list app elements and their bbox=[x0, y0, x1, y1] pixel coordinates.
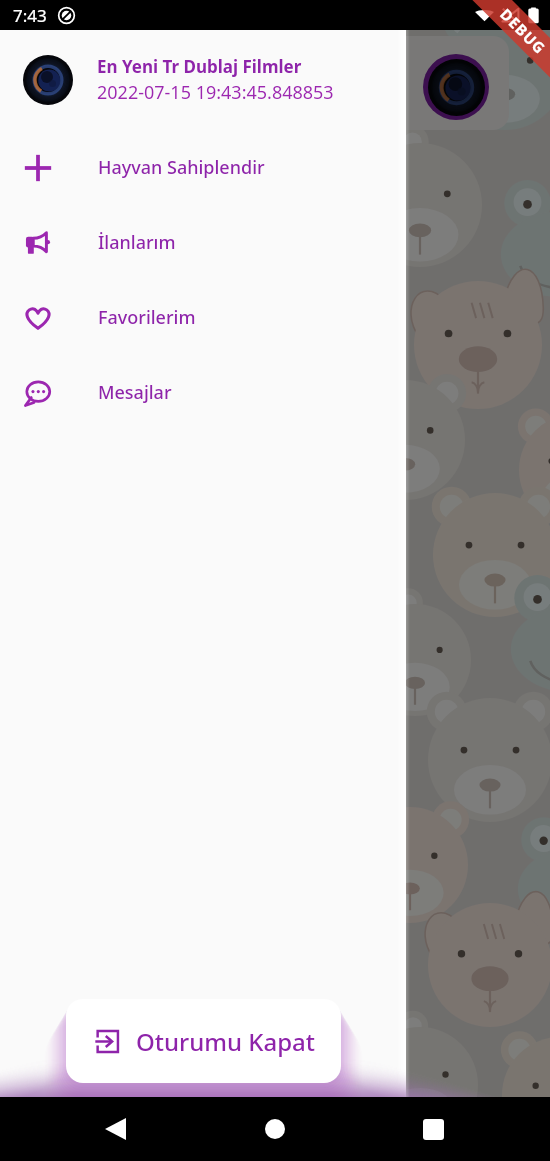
button[interactable]: En Yeni Tr Dublaj Filmler bbox=[0, 30, 406, 130]
staticText: En Yeni Tr Dublaj Filmler bbox=[97, 55, 302, 78]
staticText: 2022-07-15 19:43:45.848853 bbox=[97, 80, 334, 105]
staticText: Mesajlar bbox=[98, 380, 172, 405]
staticText: İlanlarım bbox=[98, 230, 176, 255]
button[interactable]: Favorilerim bbox=[0, 280, 406, 355]
button[interactable]: Recent apps bbox=[406, 1102, 460, 1156]
button[interactable]: Home bbox=[248, 1102, 302, 1156]
staticText: Favorilerim bbox=[98, 305, 196, 330]
button[interactable]: Hayvan Sahiplendir bbox=[0, 130, 406, 205]
button[interactable]: Oturumu Kapat bbox=[66, 999, 341, 1083]
staticText: 7:43 bbox=[13, 4, 47, 27]
button[interactable]: Mesajlar bbox=[0, 355, 406, 430]
staticText: DEBUG bbox=[496, 4, 550, 58]
staticText: Hayvan Sahiplendir bbox=[98, 155, 265, 180]
staticText: Oturumu Kapat bbox=[136, 1025, 315, 1058]
button[interactable]: İlanlarım bbox=[0, 205, 406, 280]
button[interactable]: Back bbox=[88, 1102, 142, 1156]
